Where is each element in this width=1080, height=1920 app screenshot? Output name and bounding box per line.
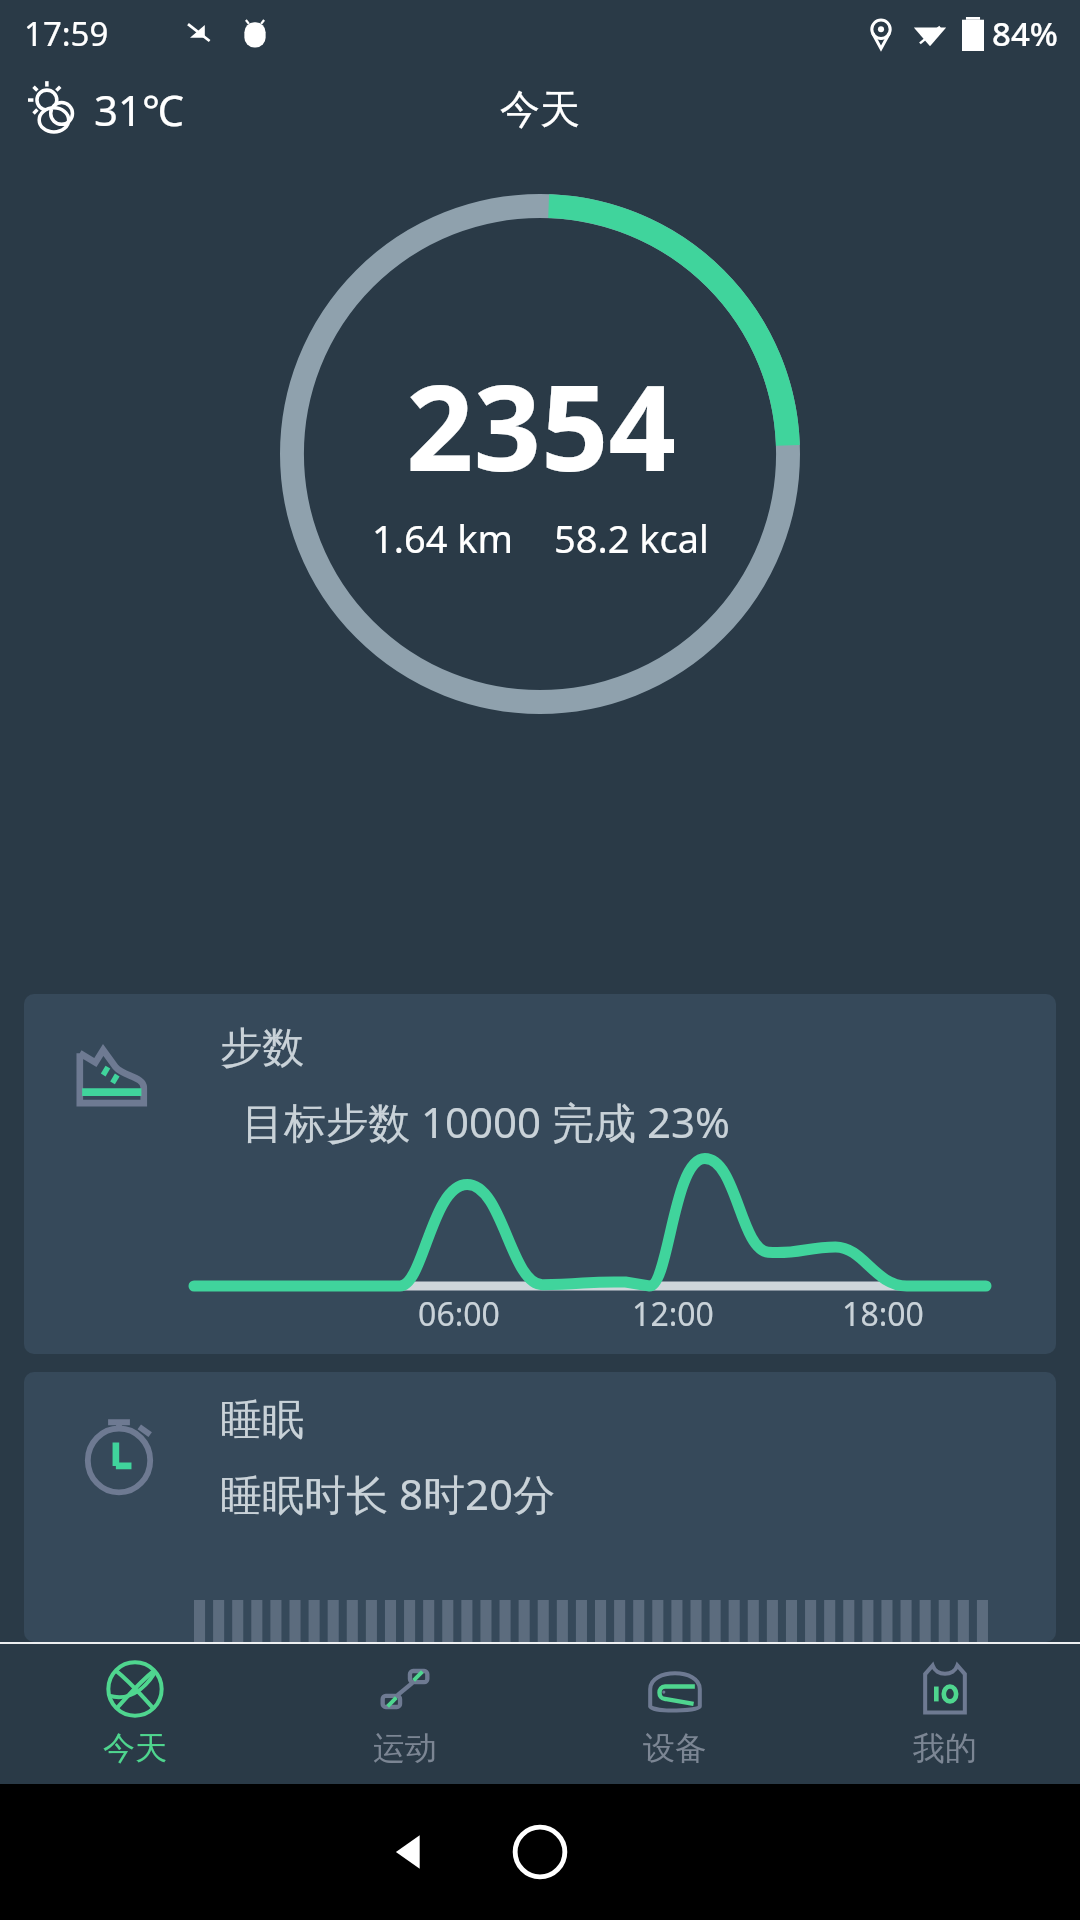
button[interactable]: 运动 (270, 1644, 540, 1784)
button[interactable]: 睡眠 (24, 1372, 1056, 1642)
other: 今天 (104, 1658, 166, 1720)
staticText: 31℃ (94, 81, 184, 138)
button[interactable]: 今天 (0, 1644, 270, 1784)
staticText: 12:00 (566, 1292, 780, 1336)
staticText: 06:00 (352, 1292, 566, 1336)
staticText: 18:00 (780, 1292, 986, 1336)
staticText: 17:59 (24, 11, 109, 56)
other: 运动 (374, 1658, 436, 1720)
staticText: 84% (992, 11, 1058, 56)
other: 设备 (644, 1658, 706, 1720)
button[interactable]: 设备 (540, 1644, 810, 1784)
staticText: 步数 (220, 1022, 304, 1075)
button[interactable]: Home (513, 1825, 567, 1879)
staticText: 睡眠 (220, 1394, 304, 1447)
staticText: 58.2 kcal (554, 512, 709, 564)
staticText: 设备 (643, 1728, 707, 1768)
staticText: 运动 (373, 1728, 437, 1768)
button[interactable]: 步数 (24, 994, 1056, 1354)
staticText: 睡眠时长 8时20分 (220, 1465, 555, 1522)
staticText: 目标步数 10000 完成 23% (242, 1093, 730, 1150)
staticText: 今天 (500, 84, 580, 134)
button[interactable]: 我的 (810, 1644, 1080, 1784)
button[interactable]: Back (388, 1830, 432, 1874)
staticText: 今天 (103, 1728, 167, 1768)
staticText: 1.64 km (372, 512, 514, 564)
other: 我的 (914, 1658, 976, 1720)
staticText: 2354 (406, 345, 676, 506)
staticText: 我的 (913, 1728, 977, 1768)
